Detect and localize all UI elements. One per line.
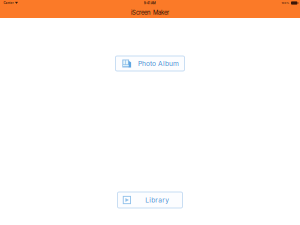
staticText: 9:41 AM — [144, 1, 156, 5]
staticText: 100% — [281, 1, 289, 5]
button[interactable]: Library — [117, 192, 182, 208]
staticText: Carrier — [3, 1, 13, 5]
staticText: Photo Album — [138, 59, 179, 68]
staticText: iScreen Maker — [131, 9, 169, 16]
staticText: Library — [145, 196, 169, 204]
button[interactable]: Photo Album — [115, 56, 184, 71]
